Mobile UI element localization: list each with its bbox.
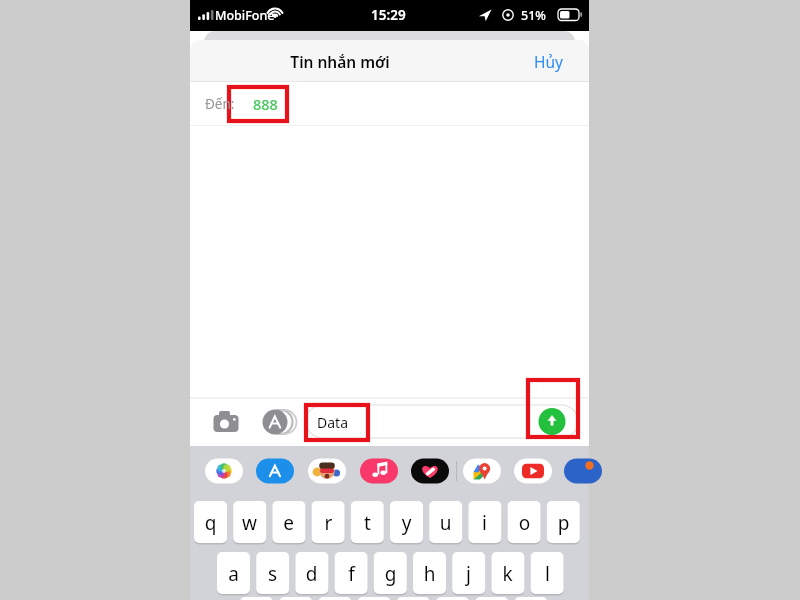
button[interactable]: f — [335, 552, 368, 594]
staticText: s — [256, 561, 289, 587]
button[interactable]: l — [531, 552, 564, 594]
button[interactable]: App 4 — [414, 456, 444, 486]
button[interactable]: App 7 — [569, 456, 599, 486]
button[interactable]: p — [547, 501, 580, 543]
button[interactable]: w — [233, 501, 266, 543]
staticText: w — [233, 510, 266, 536]
button[interactable]: o — [508, 501, 541, 543]
staticText: 51% — [521, 7, 546, 24]
staticText: h — [413, 561, 446, 587]
staticText: t — [351, 510, 384, 536]
button[interactable]: s — [256, 552, 289, 594]
button[interactable] — [190, 82, 589, 126]
button[interactable]: q — [194, 501, 227, 543]
button[interactable]: App 6 — [517, 456, 547, 486]
button[interactable]: g — [374, 552, 407, 594]
staticText: d — [295, 561, 328, 587]
button[interactable]: App 3 — [363, 456, 393, 486]
staticText: k — [491, 561, 524, 587]
button[interactable]: r — [312, 501, 345, 543]
button[interactable]: y — [390, 501, 423, 543]
button[interactable]: App 5 — [466, 456, 496, 486]
staticText: y — [390, 510, 423, 536]
button[interactable]: Camera — [210, 404, 246, 440]
staticText: g — [374, 561, 407, 587]
staticText: f — [335, 561, 368, 587]
staticText: e — [272, 510, 305, 536]
staticText: Tin nhắn mới — [240, 51, 440, 72]
button[interactable]: u — [429, 501, 462, 543]
button[interactable]: Hủy — [515, 40, 585, 82]
staticText: l — [531, 561, 564, 587]
button[interactable]: d — [295, 552, 328, 594]
button[interactable]: App 0 — [208, 456, 238, 486]
staticText: i — [468, 510, 501, 536]
staticText: p — [547, 510, 580, 536]
button[interactable] — [190, 40, 589, 82]
staticText: a — [217, 561, 250, 587]
staticText: 15:29 — [371, 6, 406, 24]
staticText: r — [312, 510, 345, 536]
button[interactable]: Send — [538, 408, 566, 436]
button[interactable]: j — [452, 552, 485, 594]
staticText: j — [452, 561, 485, 587]
staticText: Hủy — [534, 51, 563, 72]
button[interactable]: i — [468, 501, 501, 543]
button[interactable] — [298, 402, 548, 442]
staticText: MobiFone — [215, 7, 275, 24]
staticText: Đến: — [205, 95, 235, 113]
staticText: Data — [317, 413, 348, 432]
button[interactable]: App Store — [258, 404, 294, 440]
button[interactable]: a — [217, 552, 250, 594]
button[interactable]: App 1 — [260, 456, 290, 486]
button[interactable]: k — [491, 552, 524, 594]
staticText: 888 — [253, 94, 278, 114]
staticText: u — [429, 510, 462, 536]
button[interactable]: t — [351, 501, 384, 543]
staticText: q — [194, 510, 227, 536]
button[interactable]: App 2 — [311, 456, 341, 486]
button[interactable]: h — [413, 552, 446, 594]
staticText: o — [508, 510, 541, 536]
button[interactable]: e — [272, 501, 305, 543]
